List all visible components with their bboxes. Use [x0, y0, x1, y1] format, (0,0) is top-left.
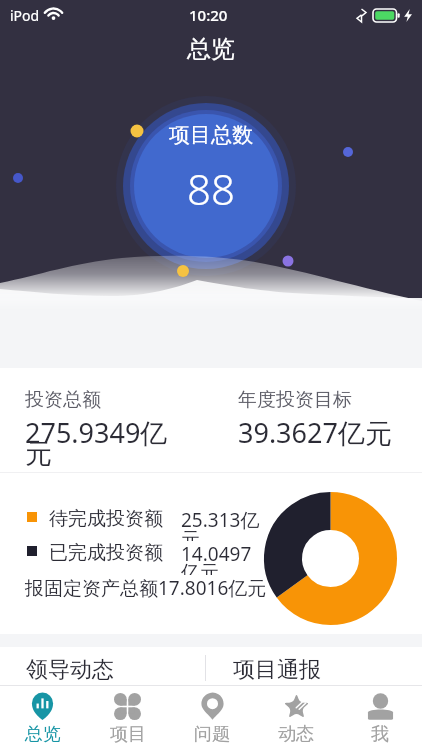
button[interactable]: 动态	[254, 686, 338, 750]
staticText: 我	[371, 723, 389, 746]
staticText: 14.0497亿元	[181, 541, 263, 575]
staticText: 项目总数	[169, 122, 253, 148]
button[interactable]: 我	[338, 686, 422, 750]
button[interactable]: 领导动态	[0, 647, 205, 685]
staticText: 总览	[187, 34, 235, 64]
staticText: 动态	[278, 723, 314, 746]
staticText: 年度投资目标	[238, 388, 352, 412]
staticText: 88	[187, 160, 235, 217]
staticText: 10:20	[189, 5, 228, 25]
staticText: 领导动态	[26, 656, 114, 684]
staticText: 总览	[25, 723, 61, 746]
staticText: 25.313亿元	[181, 507, 263, 541]
staticText: 275.9349亿	[25, 414, 168, 451]
button[interactable]: 问题	[170, 686, 254, 750]
staticText: 投资总额	[25, 388, 101, 412]
staticText: 项目	[110, 723, 146, 746]
button[interactable]: 项目	[85, 686, 170, 750]
staticText: iPod	[10, 6, 40, 25]
button[interactable]: 总览	[0, 686, 85, 750]
staticText: 问题	[194, 723, 230, 746]
staticText: 元	[25, 437, 52, 471]
staticText: 39.3627亿元	[238, 414, 392, 451]
staticText: 待完成投资额	[49, 507, 163, 531]
staticText: 项目通报	[233, 656, 321, 684]
staticText: 已完成投资额	[49, 541, 163, 565]
staticText: 报固定资产总额17.8016亿元	[25, 575, 267, 601]
button[interactable]: 项目通报	[206, 647, 422, 685]
